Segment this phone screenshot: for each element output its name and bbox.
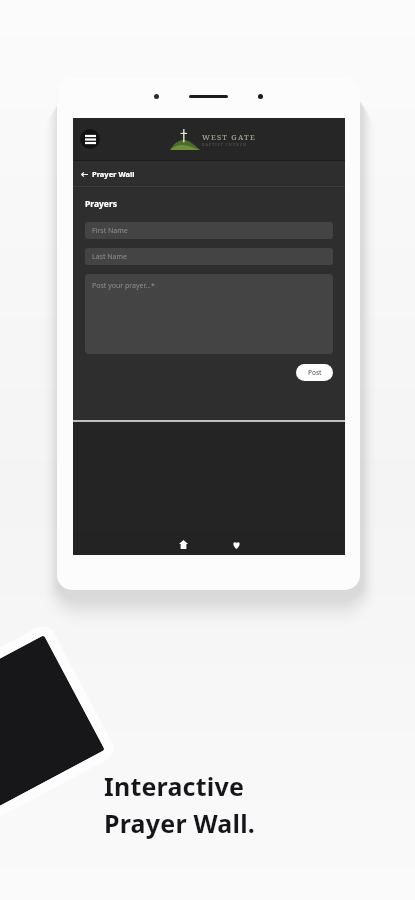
button[interactable]: Post: [296, 364, 333, 381]
staticText: Prayer Wall: [92, 169, 135, 179]
button[interactable]: Prayer Wall: [73, 161, 345, 186]
staticText: Prayer Wall.: [104, 806, 256, 840]
staticText: BAPTIST CHURCH: [202, 142, 247, 147]
staticText: Last Name: [92, 252, 128, 262]
button[interactable]: Home: [173, 534, 193, 554]
button[interactable]: Open menu: [80, 129, 100, 149]
staticText: Post your prayer...*: [92, 281, 155, 291]
staticText: First Name: [92, 226, 128, 236]
button[interactable]: Post your prayer...*: [85, 274, 333, 354]
staticText: Interactive: [104, 769, 245, 803]
button[interactable]: Favorites: [226, 534, 246, 554]
staticText: Post: [308, 368, 322, 377]
staticText: WEST GATE: [202, 132, 256, 142]
button[interactable]: Last Name: [85, 248, 333, 265]
staticText: Prayers: [85, 198, 117, 210]
button[interactable]: First Name: [85, 222, 333, 239]
